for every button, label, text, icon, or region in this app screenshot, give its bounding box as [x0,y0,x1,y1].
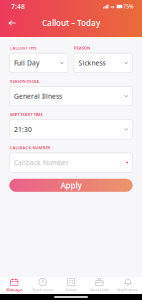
staticText: 7:48 [11,2,25,11]
button[interactable]: Manage [0,276,28,294]
staticText: Sickness [78,58,105,67]
button[interactable]: General Illness [9,86,132,106]
button[interactable]: Callback Number [9,153,132,172]
staticText: Events [65,287,76,292]
button[interactable]: Events [57,276,85,294]
staticText: REASON [74,45,90,51]
staticText: CALLOUT TYPE [9,45,36,51]
button[interactable]: Vacant jobs [85,276,114,294]
staticText: Full Day [14,58,39,67]
staticText: Quick assist [32,287,53,292]
button[interactable]: Sickness [74,53,132,73]
staticText: REASON DETAIL [9,78,39,84]
button[interactable]: 21:30 [9,120,132,139]
staticText: Callback Number [14,158,69,167]
staticText: Manage [6,287,22,292]
staticText: Callout – Today [42,18,100,28]
staticText: Notifications [117,287,138,292]
button[interactable]: Full Day [9,53,68,73]
staticText: Vacant jobs [90,287,109,292]
button[interactable]: Back [5,16,19,30]
button[interactable]: Quick assist [28,276,57,294]
button[interactable]: Notifications [114,276,142,294]
staticText: SHIFT START TIME [9,112,42,117]
button[interactable]: Apply [9,179,132,192]
staticText: General Illness [14,92,62,101]
staticText: Apply [60,180,81,191]
staticText: 21:30 [14,125,32,134]
staticText: CALLBACK NUMBER [9,145,50,150]
staticText: 75% [123,3,134,10]
